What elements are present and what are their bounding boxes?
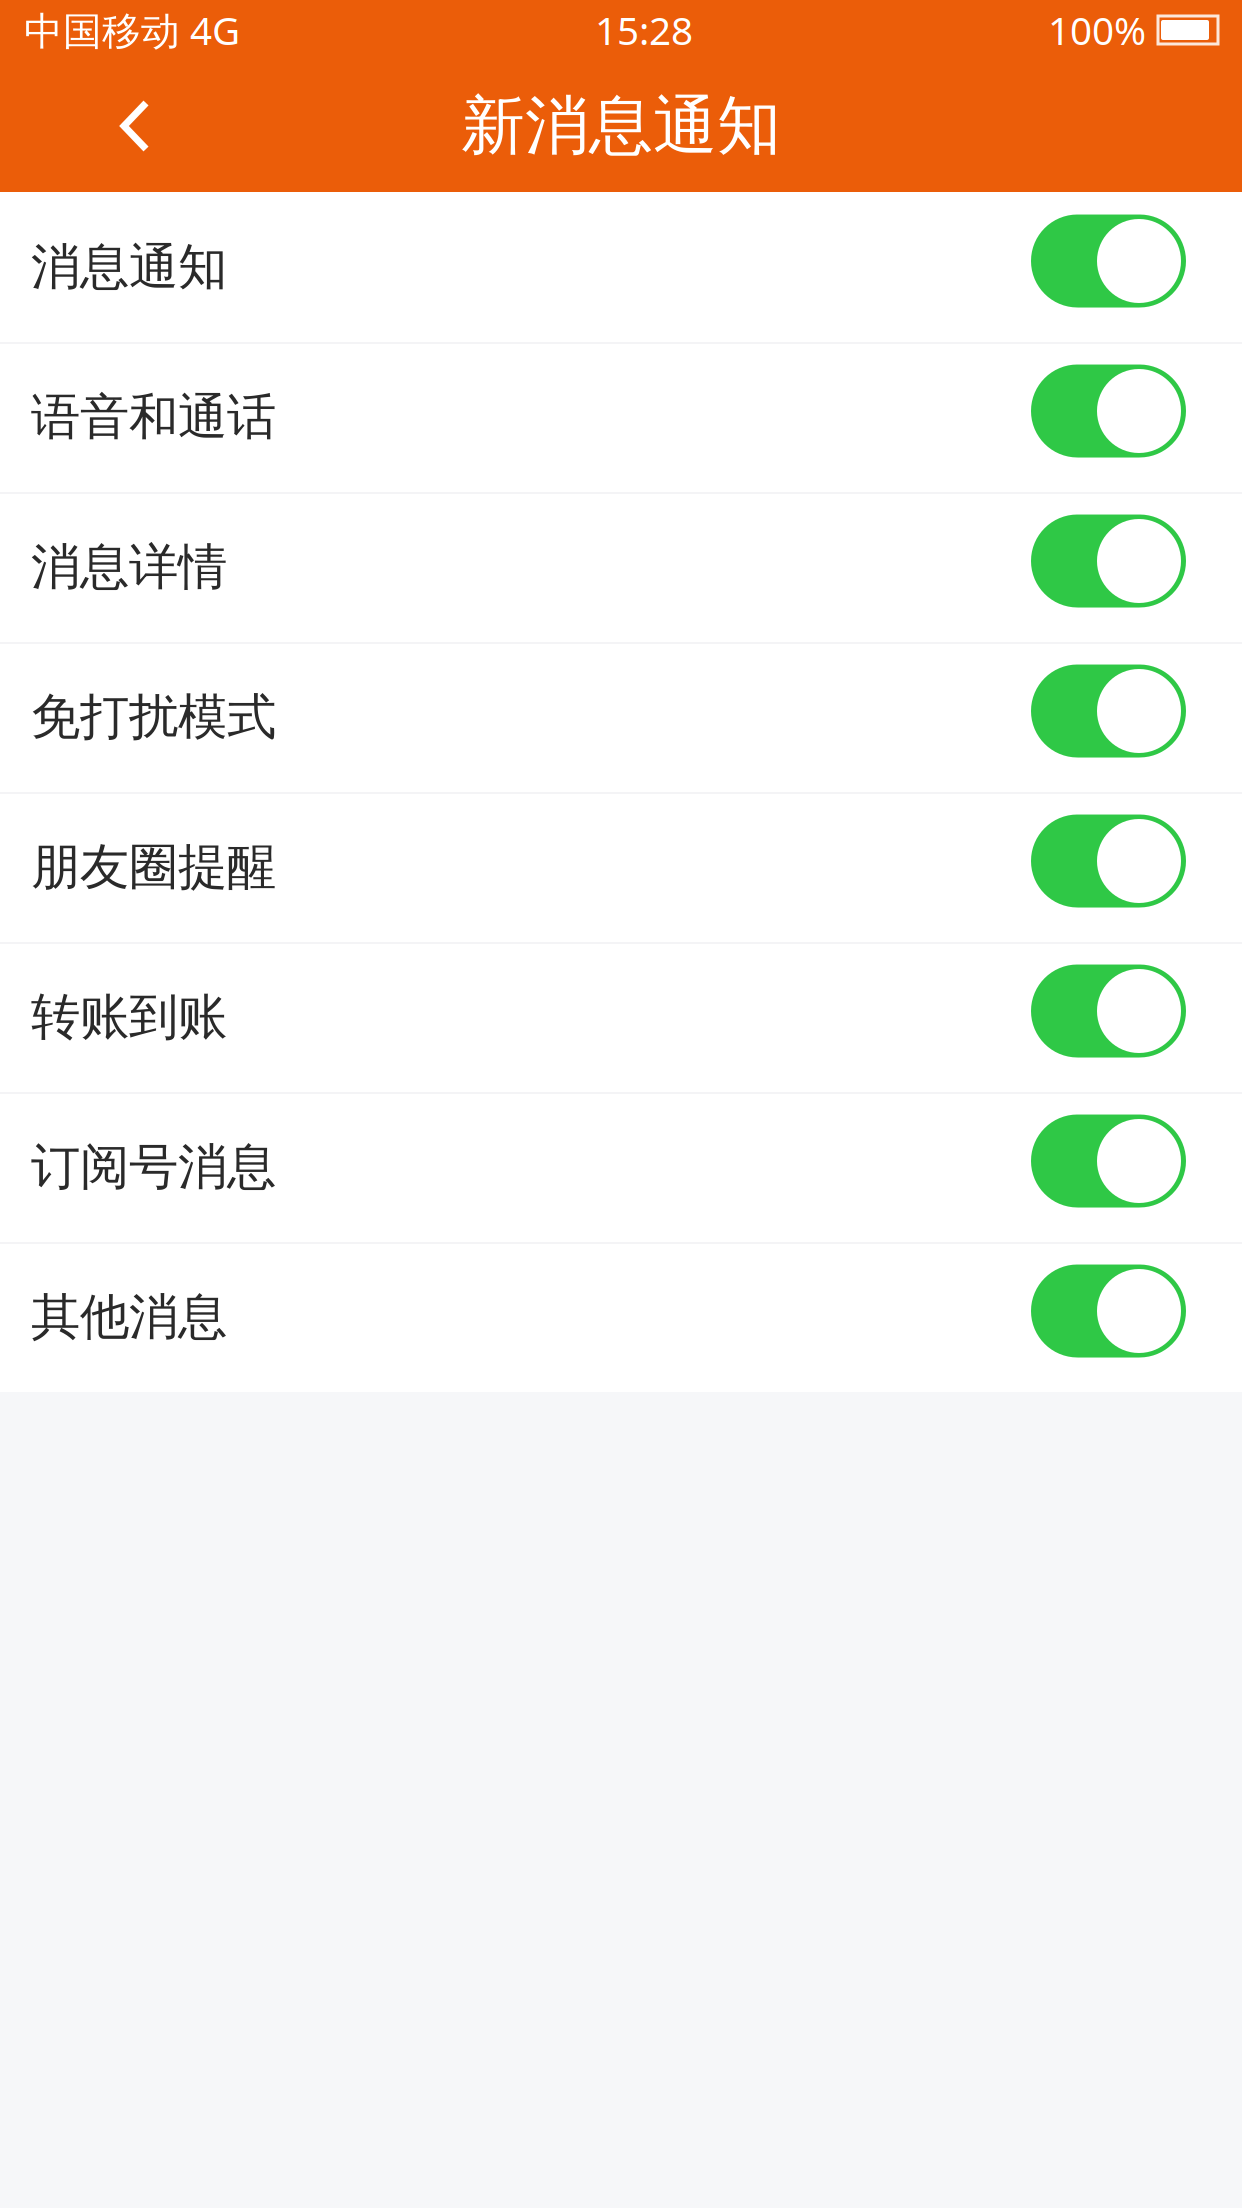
staticText: 朋友圈提醒	[31, 837, 276, 897]
staticText: 消息通知	[31, 237, 227, 297]
staticText: 15:28	[595, 4, 693, 56]
button[interactable]: Back	[70, 60, 202, 192]
button[interactable]: 订阅号消息	[0, 1092, 1242, 1242]
button[interactable]: 其他消息	[0, 1242, 1242, 1392]
staticText: 免打扰模式	[31, 687, 276, 747]
button[interactable]: 朋友圈提醒	[0, 792, 1242, 942]
staticText: 其他消息	[31, 1287, 227, 1347]
staticText: 新消息通知	[461, 87, 781, 165]
button[interactable]: 语音和通话	[0, 342, 1242, 492]
button[interactable]: 消息通知	[0, 192, 1242, 342]
staticText: 消息详情	[31, 537, 227, 597]
button[interactable]: 消息详情	[0, 492, 1242, 642]
staticText: 中国移动 4G	[24, 4, 240, 56]
button[interactable]: 免打扰模式	[0, 642, 1242, 792]
staticText: 订阅号消息	[31, 1137, 276, 1197]
button[interactable]: 转账到账	[0, 942, 1242, 1092]
staticText: 100%	[1048, 4, 1146, 56]
staticText: 转账到账	[31, 987, 227, 1047]
staticText: 语音和通话	[31, 387, 276, 447]
